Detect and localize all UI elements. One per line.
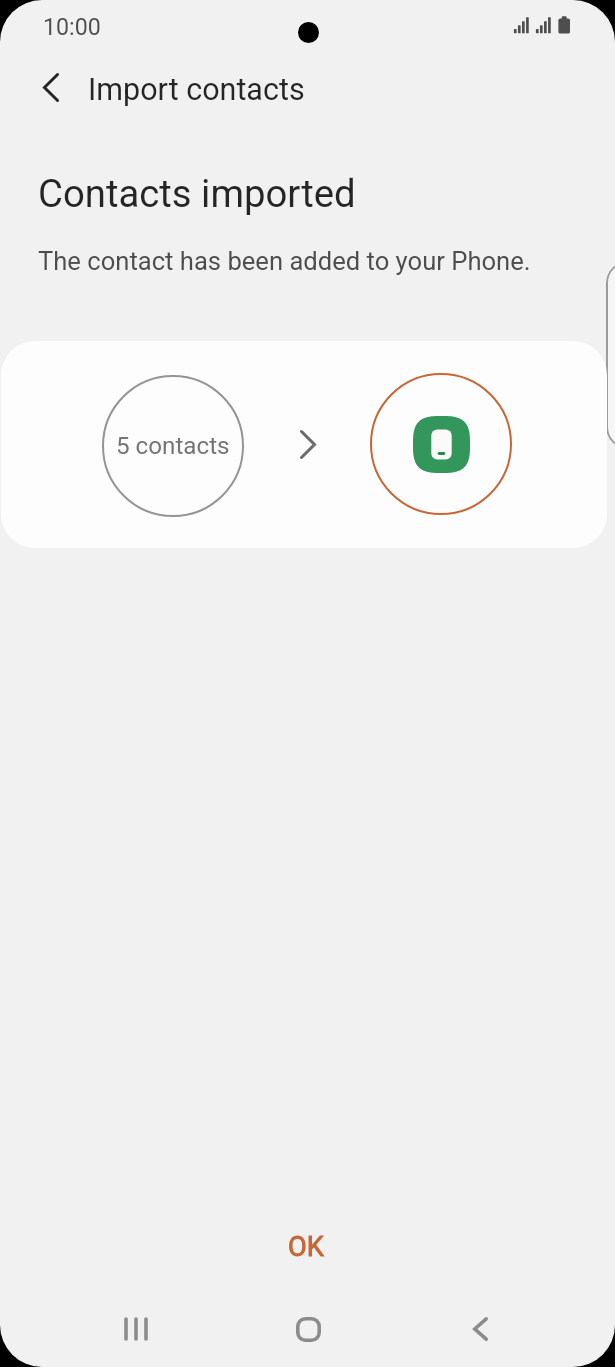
button[interactable]: Recent apps <box>100 1294 172 1364</box>
staticText: 5 contacts <box>116 432 230 460</box>
button[interactable]: Back <box>444 1294 516 1364</box>
button[interactable]: OK <box>227 1207 387 1285</box>
staticText: Contacts imported <box>38 171 356 216</box>
button[interactable]: Home <box>272 1294 344 1364</box>
staticText: 10:00 <box>43 13 101 40</box>
staticText: The contact has been added to your Phone… <box>38 246 531 276</box>
staticText: OK <box>288 1231 324 1263</box>
button[interactable]: Navigate up <box>26 63 75 112</box>
staticText: Import contacts <box>88 72 305 108</box>
